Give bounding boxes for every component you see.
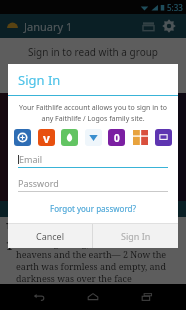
button[interactable]: Faithlife site: [108, 129, 125, 146]
button[interactable]: Home: [78, 284, 108, 310]
button[interactable]: Back: [24, 284, 54, 310]
staticText: Forgot your password?: [50, 203, 136, 214]
staticText: In the beginning, God created the heaven…: [16, 237, 180, 284]
button[interactable]: Faithlife site: [38, 129, 55, 146]
staticText: 5:33: [167, 2, 183, 13]
staticText: January 1: [24, 19, 73, 34]
staticText: The Creation: [6, 220, 57, 231]
staticText: Your Faithlife account allows you to sig…: [18, 103, 168, 123]
staticText: Sign In: [18, 71, 61, 89]
staticText: Sign in to read with a group: [0, 45, 186, 59]
button[interactable]: Sign In: [18, 65, 86, 85]
staticText: 0: [114, 131, 120, 145]
button[interactable]: Faithlife site: [155, 129, 172, 146]
button[interactable]: Forgot your password?: [8, 203, 178, 214]
staticText: Sign In: [121, 230, 151, 242]
staticText: v: [43, 130, 50, 146]
button[interactable]: Faithlife site: [85, 129, 102, 146]
button[interactable]: Faithlife site: [14, 129, 31, 146]
button[interactable]: Recents: [132, 284, 162, 310]
button[interactable]: Faithlife site: [61, 129, 78, 146]
button[interactable]: Cancel: [8, 224, 92, 248]
staticText: 1: [6, 237, 16, 253]
staticText: Cancel: [36, 230, 65, 242]
button[interactable]: Settings: [158, 15, 180, 37]
staticText: Password: [18, 177, 59, 189]
button[interactable]: Sign In: [93, 224, 178, 248]
staticText: Sign In: [37, 69, 67, 81]
button[interactable]: Calendar: [138, 16, 158, 36]
button[interactable]: Faithlife site: [132, 129, 149, 146]
staticText: Email: [19, 153, 43, 165]
